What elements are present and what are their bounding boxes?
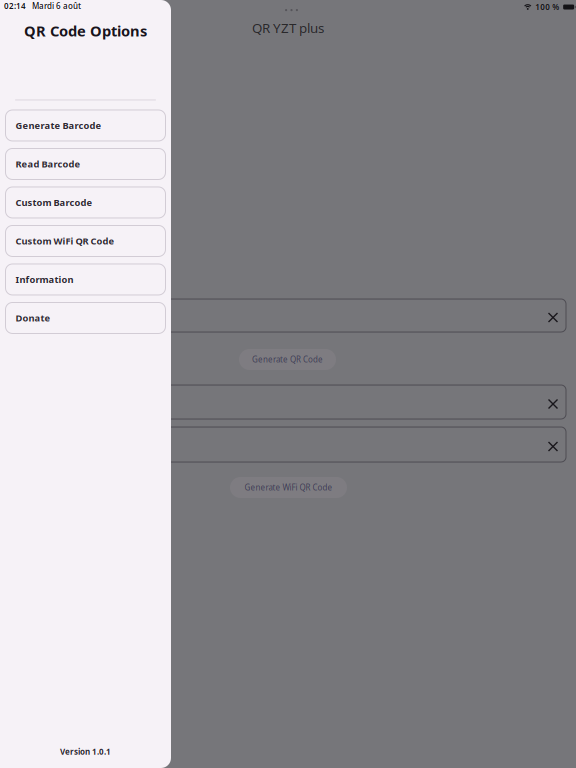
staticText: Information bbox=[15, 273, 73, 286]
button[interactable]: Multitasking controls bbox=[281, 5, 302, 15]
staticText: Custom WiFi QR Code bbox=[15, 235, 114, 247]
staticText: Version 1.0.1 bbox=[60, 746, 111, 757]
staticText: Generate WiFi QR Code bbox=[244, 482, 332, 493]
staticText: Custom Barcode bbox=[15, 196, 92, 209]
button[interactable]: Custom WiFi QR Code bbox=[5, 225, 165, 256]
button[interactable]: Clear text bbox=[540, 385, 566, 419]
staticText: 02:14 bbox=[4, 1, 26, 11]
staticText: Donate bbox=[15, 312, 50, 324]
staticText: Read Barcode bbox=[15, 158, 80, 170]
staticText: QR Code Options bbox=[24, 21, 147, 40]
button[interactable]: Clear text bbox=[540, 299, 566, 332]
button[interactable]: Custom Barcode bbox=[5, 187, 165, 218]
button[interactable]: Donate bbox=[5, 302, 165, 333]
staticText: 100 % bbox=[535, 2, 559, 12]
button[interactable]: Read Barcode bbox=[5, 148, 165, 179]
button[interactable]: Generate Barcode bbox=[5, 110, 165, 141]
button[interactable]: Generate WiFi QR Code bbox=[230, 477, 347, 498]
button[interactable]: Information bbox=[5, 264, 165, 295]
button[interactable]: Clear text bbox=[540, 427, 566, 462]
staticText: Generate QR Code bbox=[252, 354, 323, 365]
staticText: Generate Barcode bbox=[15, 119, 101, 132]
button[interactable]: Generate QR Code bbox=[239, 349, 336, 370]
staticText: QR YZT plus bbox=[252, 19, 324, 37]
staticText: Mardi 6 août bbox=[32, 1, 81, 11]
